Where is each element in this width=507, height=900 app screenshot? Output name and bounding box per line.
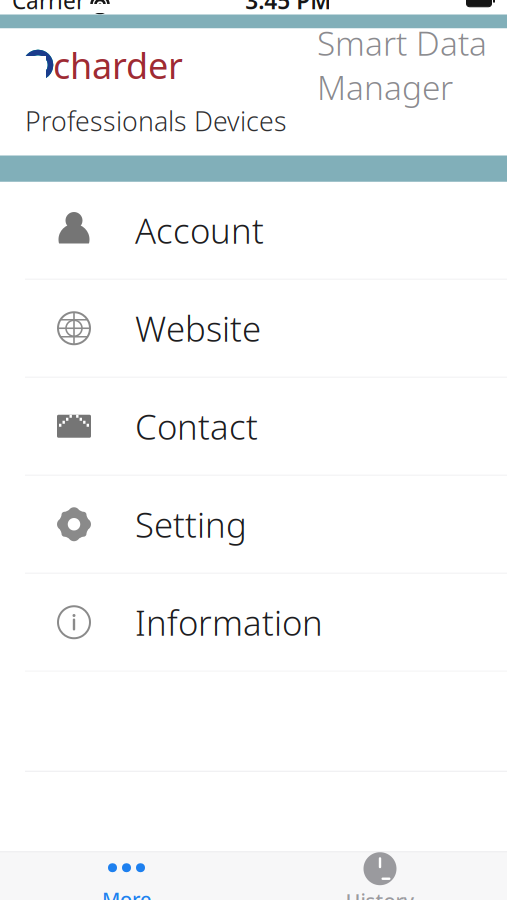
button[interactable]: Account <box>0 182 507 280</box>
staticText: Account <box>135 207 264 253</box>
button[interactable]: Information <box>0 574 507 672</box>
staticText: Contact <box>135 403 258 449</box>
staticText: Carrier <box>12 0 85 16</box>
staticText: Information <box>135 599 323 645</box>
staticText: Professionals Devices <box>25 103 287 139</box>
button[interactable]: Contact <box>0 378 507 476</box>
staticText: Smart Data Manager <box>317 21 487 109</box>
button[interactable]: History <box>253 852 507 900</box>
button[interactable]: More <box>0 852 253 900</box>
staticText: 3:45 PM <box>245 0 331 16</box>
staticText: Setting <box>135 501 247 547</box>
button[interactable]: Website <box>0 280 507 378</box>
staticText: charder <box>53 41 183 89</box>
staticText: History <box>345 887 414 900</box>
button[interactable]: Setting <box>0 476 507 574</box>
staticText: More <box>102 886 151 900</box>
staticText: Website <box>135 305 261 351</box>
